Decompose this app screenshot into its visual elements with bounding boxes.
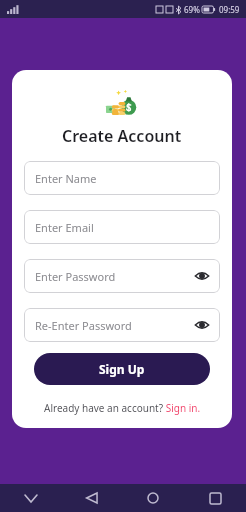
button[interactable]: Already have an account? Sign in.	[38, 399, 207, 417]
staticText: Already have an account? Sign in.	[44, 401, 201, 415]
button[interactable]: Sign Up	[34, 353, 210, 385]
button[interactable]: Home	[122, 484, 184, 512]
button[interactable]: Show password	[192, 315, 212, 335]
button[interactable]: Enter Email	[24, 210, 220, 244]
staticText: Enter Password	[35, 269, 116, 284]
button[interactable]: Hide keyboard	[0, 484, 61, 512]
button[interactable]: Recent apps	[184, 484, 246, 512]
staticText: Sign Up	[99, 361, 145, 377]
staticText: Enter Name	[35, 171, 97, 186]
staticText: 69%	[184, 4, 200, 15]
button[interactable]: Re-Enter Password	[24, 308, 220, 342]
staticText: Re-Enter Password	[35, 318, 132, 333]
staticText: Enter Email	[35, 220, 94, 235]
staticText: 09:59	[219, 4, 240, 15]
button[interactable]: Show password	[192, 266, 212, 286]
staticText: Create Account	[62, 125, 182, 147]
button[interactable]: Enter Password	[24, 259, 220, 293]
button[interactable]: Enter Name	[24, 161, 220, 195]
button[interactable]: Back	[61, 484, 122, 512]
